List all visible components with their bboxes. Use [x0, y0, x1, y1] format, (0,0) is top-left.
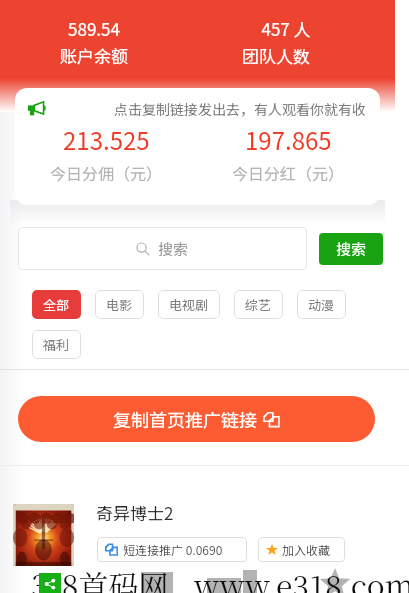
button[interactable]: 搜索: [18, 227, 307, 270]
staticText: www.e318.com: [194, 562, 409, 593]
staticText: 今日分红（元）: [232, 161, 345, 184]
staticText: 福利: [43, 335, 70, 354]
staticText: 213.525: [63, 122, 150, 157]
button[interactable]: 加入收藏: [258, 537, 345, 562]
staticText: 电视剧: [169, 295, 209, 314]
staticText: 加入收藏: [282, 541, 331, 558]
button[interactable]: 全部: [32, 290, 81, 319]
button[interactable]: 综艺: [234, 290, 283, 319]
staticText: 点击复制链接发出去，有人观看你就有收益: [114, 99, 378, 119]
other: Copy: [105, 543, 118, 556]
staticText: 搜索: [336, 238, 367, 260]
staticText: 457 人: [261, 16, 311, 41]
button[interactable]: Copy: [97, 537, 247, 562]
staticText: 电影: [106, 295, 133, 314]
button[interactable]: [13, 504, 74, 566]
other: Announcement: [27, 100, 45, 118]
staticText: 318首码网: [31, 562, 169, 593]
staticText: 589.54: [68, 16, 120, 41]
staticText: 全部: [43, 295, 70, 314]
button[interactable]: 电视剧: [158, 290, 220, 319]
staticText: 综艺: [245, 295, 272, 314]
button[interactable]: 福利: [32, 330, 81, 359]
button[interactable]: 搜索: [319, 233, 383, 265]
staticText: 搜索: [158, 238, 189, 260]
staticText: 今日分佣（元）: [50, 161, 163, 184]
staticText: 动漫: [308, 295, 335, 314]
staticText: 197.865: [245, 122, 332, 157]
other: Copy: [263, 411, 280, 428]
staticText: 奇异博士2: [96, 500, 174, 525]
staticText: 短连接推广 0.0690: [123, 541, 223, 558]
staticText: 复制首页推广链接: [113, 406, 257, 432]
button[interactable]: 电影: [95, 290, 144, 319]
staticText: 团队人数: [242, 43, 310, 68]
staticText: 账户余额: [60, 43, 128, 68]
button[interactable]: 动漫: [297, 290, 346, 319]
button[interactable]: 复制首页推广链接: [18, 396, 375, 442]
